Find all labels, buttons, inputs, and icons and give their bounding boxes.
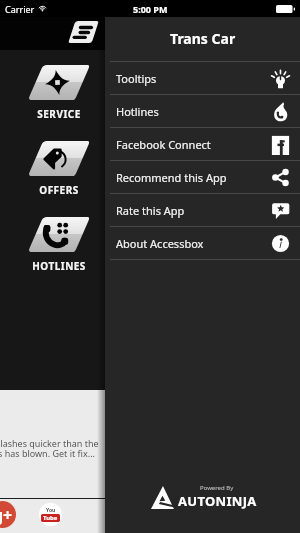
button[interactable]: SERVICE: [0, 65, 105, 121]
staticText: About Accessbox: [116, 236, 204, 251]
staticText: Rate this App: [116, 203, 185, 218]
staticText: g+: [0, 504, 13, 526]
button[interactable]: OFFERS: [0, 141, 105, 197]
staticText: Tube: [43, 514, 58, 522]
staticText: 5:00 PM: [133, 3, 168, 15]
button[interactable]: YouTube: [39, 503, 62, 526]
staticText: Recommend this App: [116, 170, 227, 185]
staticText: llashes quicker than the: [0, 437, 99, 449]
staticText: Tooltips: [116, 71, 157, 86]
staticText: s has blown. Get it fix...: [0, 447, 95, 459]
button[interactable]: Tooltips: [105, 62, 300, 95]
button[interactable]: Hotlines: [105, 95, 300, 128]
staticText: SERVICE: [37, 107, 81, 121]
button[interactable]: Menu: [68, 21, 99, 43]
staticText: OFFERS: [39, 183, 79, 197]
button[interactable]: Facebook Connect: [105, 128, 300, 161]
button[interactable]: Google Plus: [0, 501, 16, 528]
button[interactable]: HOTLINES: [0, 217, 105, 273]
button[interactable]: Recommend this App: [105, 161, 300, 194]
staticText: Hotlines: [116, 104, 159, 119]
staticText: AUTONINJA: [178, 492, 257, 510]
staticText: Carrier: [5, 3, 35, 15]
staticText: HOTLINES: [32, 259, 86, 273]
staticText: Powered By: [200, 484, 234, 492]
staticText: Facebook Connect: [116, 137, 211, 152]
staticText: You: [46, 507, 56, 514]
staticText: Trans Car: [170, 29, 236, 48]
button[interactable]: Rate this App: [105, 194, 300, 227]
button[interactable]: About Accessbox: [105, 227, 300, 260]
